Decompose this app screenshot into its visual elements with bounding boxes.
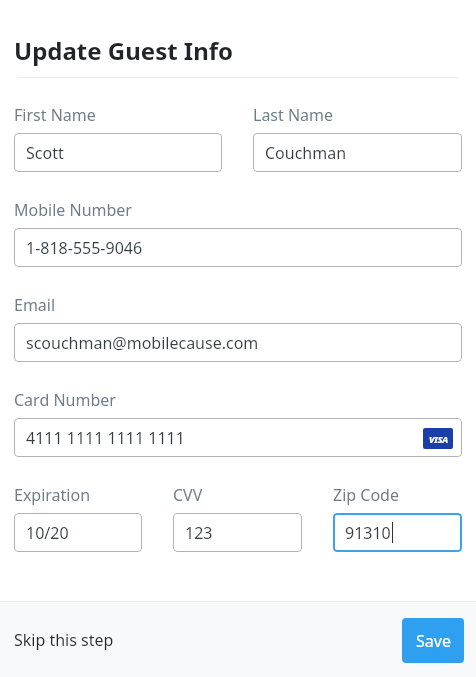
staticText: Save xyxy=(416,630,451,652)
button[interactable]: 1-818-555-9046 xyxy=(14,228,462,267)
button[interactable]: 4111 1111 1111 1111 xyxy=(14,418,462,457)
button[interactable]: scouchman@mobilecause.com xyxy=(14,323,462,362)
staticText: Mobile Number xyxy=(14,199,132,221)
staticText: CVV xyxy=(173,484,203,506)
staticText: 4111 1111 1111 1111 xyxy=(26,427,185,449)
button[interactable]: 91310 xyxy=(333,513,462,552)
staticText: 91310 xyxy=(345,522,391,544)
staticText: Scott xyxy=(26,142,64,164)
staticText: Zip Code xyxy=(333,484,399,506)
staticText: Last Name xyxy=(253,104,334,126)
staticText: Card Number xyxy=(14,389,116,411)
staticText: Expiration xyxy=(14,484,91,506)
staticText: 1-818-555-9046 xyxy=(26,237,143,259)
staticText: Email xyxy=(14,294,56,316)
staticText: VISA xyxy=(429,433,448,445)
staticText: First Name xyxy=(14,104,96,126)
staticText: 123 xyxy=(185,522,213,544)
staticText: scouchman@mobilecause.com xyxy=(26,332,259,354)
other: Visa card xyxy=(423,428,453,449)
button[interactable]: Couchman xyxy=(253,133,462,172)
button[interactable]: Scott xyxy=(14,133,222,172)
staticText: Couchman xyxy=(265,142,347,164)
button[interactable]: Save xyxy=(402,618,464,663)
staticText: Update Guest Info xyxy=(14,34,234,67)
button[interactable]: 10/20 xyxy=(14,513,142,552)
button[interactable]: 123 xyxy=(173,513,302,552)
button[interactable]: Skip this step xyxy=(14,625,114,655)
staticText: Skip this step xyxy=(14,629,114,651)
staticText: 10/20 xyxy=(26,522,69,544)
